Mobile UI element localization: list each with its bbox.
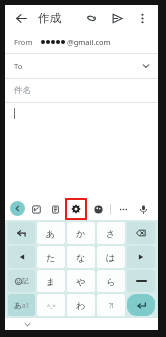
staticText: 件名	[14, 85, 31, 96]
button[interactable]: Input mode	[8, 294, 35, 316]
staticText: や	[76, 276, 86, 287]
button[interactable]: Clipboard	[28, 201, 44, 217]
button[interactable]: あ	[37, 222, 65, 244]
staticText: To	[14, 61, 23, 71]
button[interactable]: な	[67, 246, 95, 268]
button[interactable]: た	[37, 246, 65, 268]
staticText: ^_^	[47, 302, 56, 309]
button[interactable]: Delete	[127, 222, 155, 244]
button[interactable]: Expand toolbar	[10, 201, 25, 216]
button[interactable]: 件名	[5, 79, 158, 103]
button[interactable]: Send	[107, 8, 127, 28]
staticText: あ	[14, 301, 22, 310]
button[interactable]: Undo	[8, 222, 35, 244]
button[interactable]: さ	[97, 222, 125, 244]
button[interactable]: More options	[132, 8, 152, 28]
staticText: か	[76, 228, 86, 239]
button[interactable]: Voice input	[135, 201, 151, 217]
button[interactable]: や	[67, 270, 95, 292]
button[interactable]: From	[5, 31, 158, 54]
button[interactable]: Right	[127, 246, 155, 268]
button[interactable]: Stickers	[90, 201, 106, 217]
staticText: ら	[106, 276, 116, 287]
button[interactable]: Emoji	[8, 270, 35, 292]
button[interactable]: To	[5, 54, 158, 79]
staticText: 記	[22, 277, 29, 285]
button[interactable]	[5, 103, 158, 197]
staticText: @gmail.com	[67, 37, 111, 47]
button[interactable]: Left	[8, 246, 35, 268]
staticText: は	[106, 252, 116, 263]
staticText: あ	[46, 228, 56, 239]
button[interactable]: か	[67, 222, 95, 244]
button[interactable]: Attach file	[81, 8, 101, 28]
staticText: な	[76, 252, 86, 263]
button[interactable]: Enter	[127, 294, 155, 316]
staticText: さ	[106, 228, 116, 239]
button[interactable]: は	[97, 246, 125, 268]
staticText: わ	[76, 300, 86, 311]
button[interactable]: More	[115, 201, 131, 217]
button[interactable]: わ	[67, 294, 95, 316]
staticText: ま	[46, 276, 56, 287]
staticText: From	[14, 37, 33, 47]
staticText: た	[46, 252, 56, 263]
staticText: a1	[22, 301, 30, 310]
button[interactable]: Space	[127, 270, 155, 292]
button[interactable]: Hide keyboard	[21, 318, 33, 330]
button[interactable]: Punctuation	[97, 294, 125, 316]
staticText: ?!	[109, 301, 114, 310]
button[interactable]: Kaomoji	[37, 294, 65, 316]
staticText: 作成	[38, 11, 61, 25]
button[interactable]: Translate	[47, 201, 63, 217]
button[interactable]: Settings	[66, 199, 86, 219]
button[interactable]: Back	[11, 8, 31, 28]
button[interactable]: ま	[37, 270, 65, 292]
button[interactable]: ら	[97, 270, 125, 292]
